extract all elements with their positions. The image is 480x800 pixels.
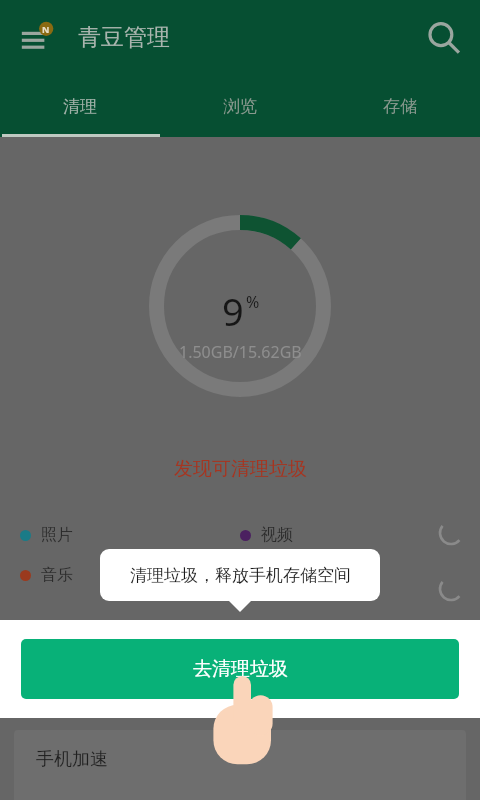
staticText: 发现可清理垃圾 [174, 457, 307, 481]
staticText: 9 [222, 285, 244, 337]
staticText: 去清理垃圾 [193, 657, 288, 681]
staticText: 手机加速 [36, 748, 108, 771]
staticText: 浏览 [223, 96, 257, 117]
button[interactable]: 手机加速 [14, 730, 466, 800]
staticText: 音乐 [41, 565, 73, 585]
button[interactable]: 存储 [320, 75, 480, 137]
staticText: 清理垃圾，释放手机存储空间 [130, 565, 351, 586]
button[interactable]: 浏览 [160, 75, 320, 137]
button[interactable]: Menu [14, 15, 60, 61]
button[interactable]: Search [422, 17, 464, 59]
staticText: 青豆管理 [78, 23, 170, 52]
staticText: 清理 [63, 96, 97, 117]
button[interactable]: 去清理垃圾 [21, 639, 459, 699]
staticText: 存储 [383, 96, 417, 117]
staticText: 视频 [261, 525, 293, 545]
staticText: N [42, 23, 50, 35]
staticText: 照片 [41, 525, 73, 545]
staticText: 1.50GB/15.62GB [179, 341, 302, 363]
staticText: % [246, 291, 260, 313]
button[interactable]: 清理 [0, 75, 160, 137]
